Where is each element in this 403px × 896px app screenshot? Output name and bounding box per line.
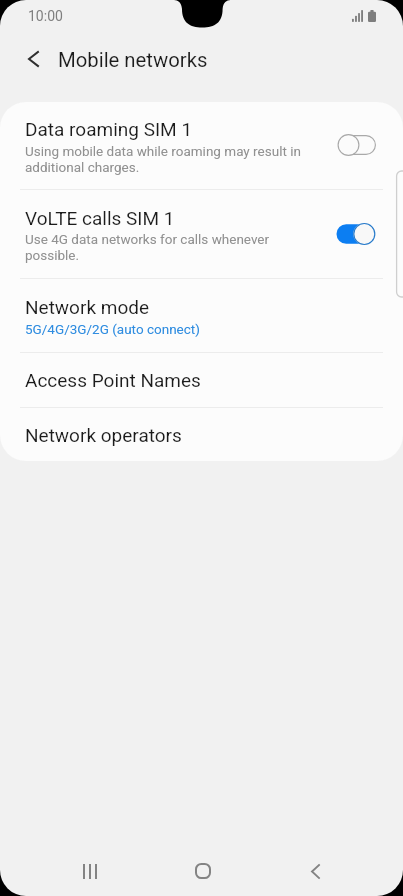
button[interactable]: Navigate up [16,42,50,76]
staticText: 5G/4G/3G/2G (auto connect) [25,321,200,337]
button[interactable]: VoLTE calls SIM 1 [0,190,403,278]
staticText: Using mobile data while roaming may resu… [25,143,301,176]
button[interactable]: Network mode [0,279,403,352]
staticText: 10:00 [28,8,63,24]
button[interactable]: Recent apps [34,846,146,896]
staticText: Mobile networks [58,48,208,72]
staticText: Network mode [25,296,150,318]
button[interactable]: On [336,222,376,246]
button[interactable]: Access Point Names [0,353,403,407]
button[interactable]: Off [337,133,377,157]
staticText: Data roaming SIM 1 [25,118,193,140]
staticText: Use 4G data networks for calls whenever … [25,231,270,264]
staticText: VoLTE calls SIM 1 [25,207,175,229]
staticText: Access Point Names [25,369,201,391]
button[interactable]: Network operators [0,408,403,461]
staticText: Network operators [25,424,182,446]
button[interactable]: Home [146,846,259,896]
button[interactable]: Data roaming SIM 1 [0,102,403,189]
button[interactable]: Back [259,846,372,896]
